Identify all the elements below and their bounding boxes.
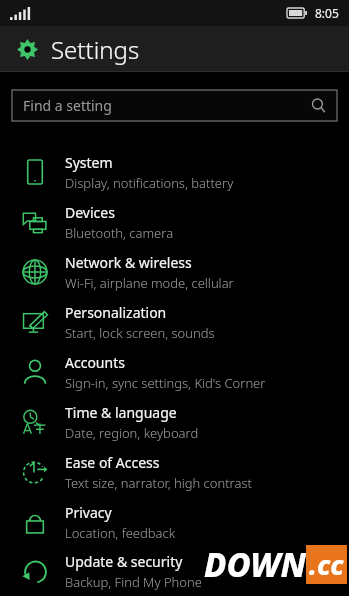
button[interactable]: System xyxy=(0,147,349,197)
staticText: Date, region, keyboard xyxy=(65,424,199,442)
button[interactable]: Devices xyxy=(0,197,349,247)
staticText: Accounts xyxy=(65,353,125,372)
staticText: Network & wireless xyxy=(65,253,192,272)
staticText: Text size, narrator, high contrast xyxy=(65,474,252,492)
staticText: Privacy xyxy=(65,503,112,522)
staticText: Sign-in, sync settings, Kid's Corner xyxy=(65,374,266,392)
button[interactable]: Find a setting xyxy=(12,90,337,121)
button[interactable]: Update & security xyxy=(0,547,349,596)
button[interactable]: Network & wireless xyxy=(0,247,349,297)
staticText: Personalization xyxy=(65,303,167,322)
staticText: Start, lock screen, sounds xyxy=(65,324,215,342)
staticText: Backup, Find My Phone xyxy=(65,573,202,591)
button[interactable]: Privacy xyxy=(0,497,349,547)
staticText: Devices xyxy=(65,203,115,222)
staticText: Settings xyxy=(51,33,140,66)
staticText: DOWN xyxy=(204,542,306,587)
other: Battery xyxy=(287,8,307,18)
staticText: Time & language xyxy=(65,403,177,422)
staticText: Display, notifications, battery xyxy=(65,174,234,192)
button[interactable]: Personalization xyxy=(0,297,349,347)
staticText: System xyxy=(65,153,113,172)
button[interactable]: Time & language xyxy=(0,397,349,447)
button[interactable]: Ease of Access xyxy=(0,447,349,497)
other: Signal strength xyxy=(10,7,32,20)
staticText: Find a setting xyxy=(23,96,112,115)
staticText: Update & security xyxy=(65,552,183,571)
staticText: Ease of Access xyxy=(65,453,160,472)
staticText: Location, feedback xyxy=(65,524,176,542)
staticText: Wi-Fi, airplane mode, cellular xyxy=(65,274,234,292)
staticText: Bluetooth, camera xyxy=(65,224,174,242)
button[interactable]: Accounts xyxy=(0,347,349,397)
staticText: 8:05 xyxy=(315,5,339,21)
staticText: .cc xyxy=(309,546,344,583)
